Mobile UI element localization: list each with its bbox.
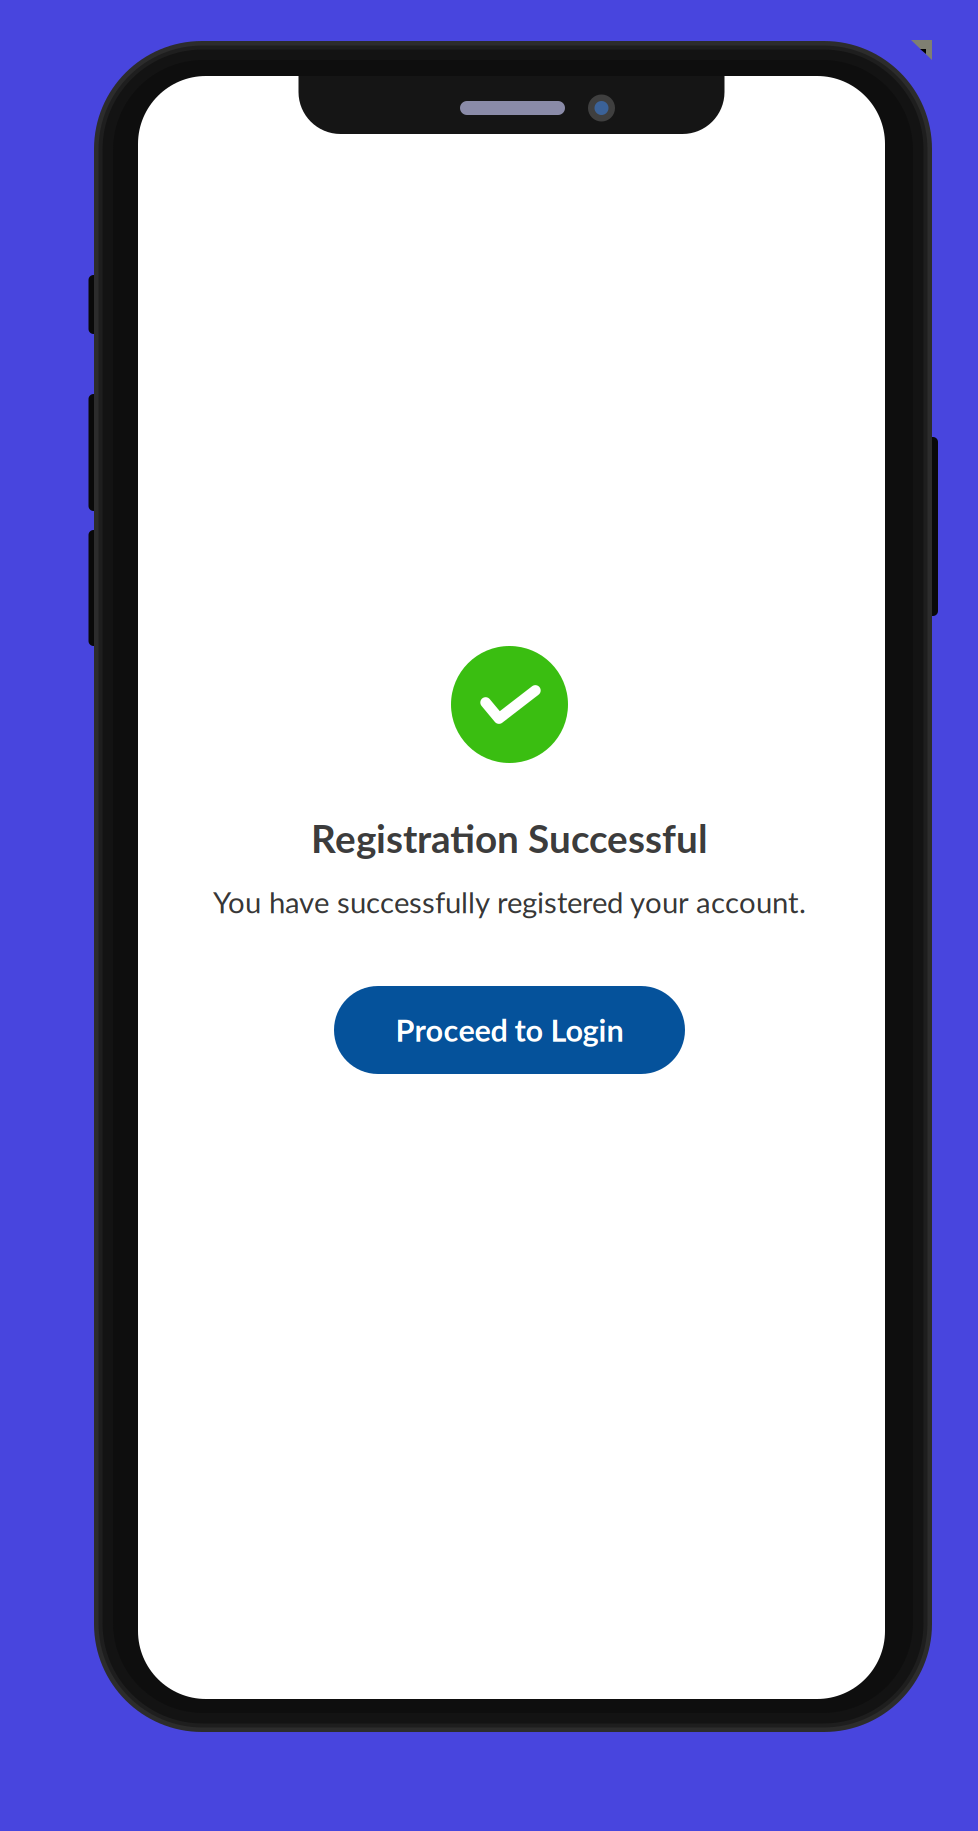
- button[interactable]: Proceed to Login: [334, 986, 685, 1074]
- staticText: You have successfully registered your ac…: [213, 884, 806, 920]
- staticText: Proceed to Login: [395, 1012, 623, 1048]
- staticText: Registration Successful: [311, 815, 708, 861]
